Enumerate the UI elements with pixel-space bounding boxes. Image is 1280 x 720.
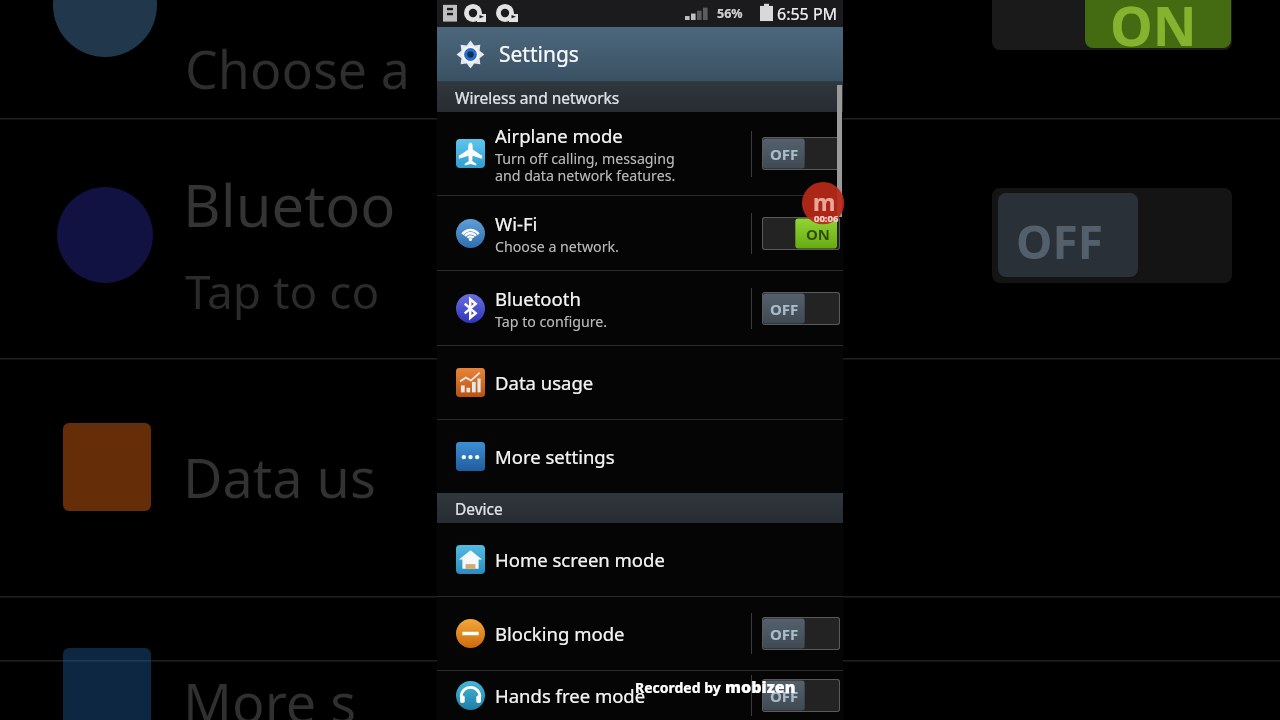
staticText: More s: [183, 665, 357, 720]
staticText: Airplane mode: [495, 123, 623, 148]
button[interactable]: OFF: [762, 292, 840, 325]
button[interactable]: Blocking mode: [437, 597, 843, 670]
button[interactable]: OFF: [762, 679, 840, 712]
staticText: Blocking mode: [495, 621, 625, 646]
staticText: Turn off calling, messaging and data net…: [495, 149, 676, 185]
staticText: 6:55 PM: [777, 3, 838, 25]
staticText: Device: [455, 498, 503, 519]
button[interactable]: OFF: [762, 617, 840, 650]
staticText: m: [813, 186, 836, 217]
staticText: Recorded by: [635, 678, 725, 697]
button[interactable]: More settings: [437, 420, 843, 493]
staticText: OFF: [770, 624, 799, 644]
staticText: Tap to configure.: [495, 312, 608, 331]
staticText: OFF: [1016, 210, 1103, 273]
button[interactable]: Airplane mode: [437, 112, 843, 195]
staticText: Bluetoo: [183, 165, 396, 244]
staticText: Wi-Fi: [495, 211, 538, 236]
staticText: More settings: [495, 444, 615, 469]
staticText: Wireless and networks: [455, 87, 620, 108]
staticText: Hands free mode: [495, 683, 646, 708]
button[interactable]: ON: [762, 217, 840, 250]
staticText: Data us: [183, 440, 376, 514]
staticText: Choose a: [185, 33, 410, 104]
button[interactable]: Wi-Fi: [437, 196, 843, 270]
staticText: Choose a network.: [495, 237, 619, 256]
staticText: Tap to co: [185, 260, 380, 323]
staticText: Data usage: [495, 370, 594, 395]
other: Recording indicator: [801, 182, 849, 230]
staticText: ON: [1110, 0, 1197, 62]
staticText: mobizen: [725, 676, 796, 698]
staticText: OFF: [770, 144, 799, 164]
button[interactable]: OFF: [762, 137, 840, 170]
staticText: Home screen mode: [495, 547, 665, 572]
button[interactable]: Bluetooth: [437, 271, 843, 345]
staticText: 56%: [717, 5, 743, 22]
staticText: Bluetooth: [495, 286, 581, 311]
staticText: OFF: [770, 299, 799, 319]
button[interactable]: Hands free mode: [437, 671, 843, 720]
staticText: OFF: [770, 686, 799, 706]
staticText: 00:06: [814, 212, 839, 225]
staticText: ON: [806, 224, 831, 244]
staticText: Settings: [499, 40, 579, 69]
button[interactable]: Home screen mode: [437, 523, 843, 596]
button[interactable]: Data usage: [437, 346, 843, 419]
